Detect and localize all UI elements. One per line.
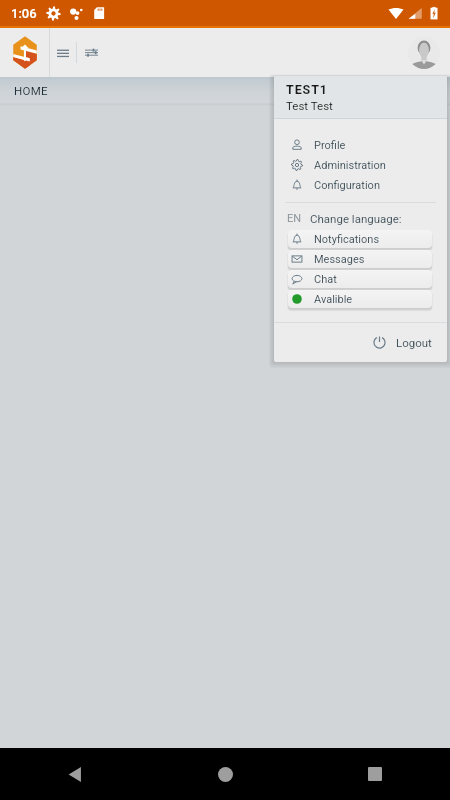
button[interactable]: EN [274,210,447,226]
button[interactable]: Administration [274,155,447,175]
button[interactable]: Account [400,28,448,77]
button[interactable]: Messages [288,250,432,268]
staticText: 1:06 [11,6,37,21]
button[interactable]: Back [0,748,150,800]
staticText: HOME [14,84,48,97]
staticText: EN [287,212,302,225]
button[interactable]: Chat [288,270,432,288]
staticText: Logout [396,336,432,349]
staticText: TEST1 [286,82,328,97]
staticText: Change language: [310,212,402,225]
button[interactable]: Filter [77,28,105,77]
button[interactable]: Menu [50,28,76,77]
staticText: Messages [314,253,365,266]
staticText: Avalible [314,293,353,306]
button[interactable]: Avalible [288,290,432,308]
staticText: Configuration [314,179,380,192]
staticText: Profile [314,139,346,152]
staticText: Chat [314,273,337,286]
staticText: Test Test [286,99,333,112]
button[interactable]: Recents [300,748,450,800]
button[interactable]: Profile [274,135,447,155]
button[interactable]: Home logo [0,28,49,77]
button[interactable]: Notyfications [288,230,432,248]
staticText: Notyfications [314,233,380,246]
button[interactable]: Home [150,748,300,800]
button[interactable]: Logout [274,323,447,362]
staticText: Administration [314,159,386,172]
button[interactable]: Configuration [274,175,447,195]
